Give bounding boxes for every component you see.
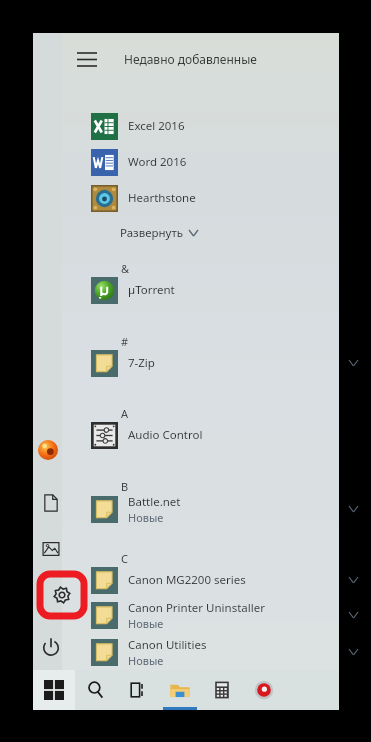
button[interactable]: Search [75, 670, 117, 710]
button[interactable]: Power [38, 634, 64, 660]
button[interactable]: Menu [71, 45, 103, 73]
staticText: # [121, 334, 129, 349]
staticText: B [121, 479, 129, 494]
staticText: Новые [128, 510, 164, 525]
button[interactable]: Word 2016 [62, 147, 368, 177]
staticText: Развернуть [120, 225, 184, 241]
staticText: Word 2016 [128, 154, 187, 170]
staticText: Недавно добавленные [124, 51, 257, 67]
button[interactable]: Hearthstone [62, 183, 368, 213]
staticText: Battle.net [128, 494, 181, 510]
button[interactable]: Excel 2016 [62, 111, 368, 141]
staticText: Новые [128, 653, 164, 668]
button[interactable]: Account [36, 438, 60, 462]
staticText: µTorrent [128, 282, 175, 298]
button[interactable]: Settings [38, 572, 86, 618]
staticText: Canon MG2200 series [128, 572, 246, 588]
button[interactable]: Audio Control [62, 420, 368, 450]
staticText: 7-Zip [128, 355, 155, 371]
staticText: & [121, 261, 130, 276]
staticText: Excel 2016 [128, 118, 185, 134]
staticText: C [121, 551, 128, 566]
button[interactable]: File Explorer [159, 670, 201, 710]
button[interactable]: Развернуть [120, 223, 230, 243]
staticText: Canon Printer Uninstaller [128, 600, 265, 616]
staticText: Новые [128, 616, 164, 631]
button[interactable]: Pictures [38, 536, 64, 562]
button[interactable]: Canon Utilities [62, 635, 368, 669]
button[interactable]: Task view [117, 670, 159, 710]
button[interactable]: Calculator [201, 670, 243, 710]
button[interactable]: Canon Printer Uninstaller [62, 598, 368, 632]
staticText: Audio Control [128, 427, 203, 443]
button[interactable]: Battle.net [62, 492, 368, 526]
staticText: A [121, 406, 129, 421]
button[interactable]: App [243, 670, 285, 710]
button[interactable]: µTorrent [62, 275, 368, 305]
button[interactable]: Start [33, 670, 75, 710]
button[interactable]: 7-Zip [62, 348, 368, 378]
button[interactable]: Canon MG2200 series [62, 565, 368, 595]
staticText: Hearthstone [128, 190, 196, 206]
staticText: Canon Utilities [128, 637, 207, 653]
button[interactable]: Documents [38, 490, 64, 516]
